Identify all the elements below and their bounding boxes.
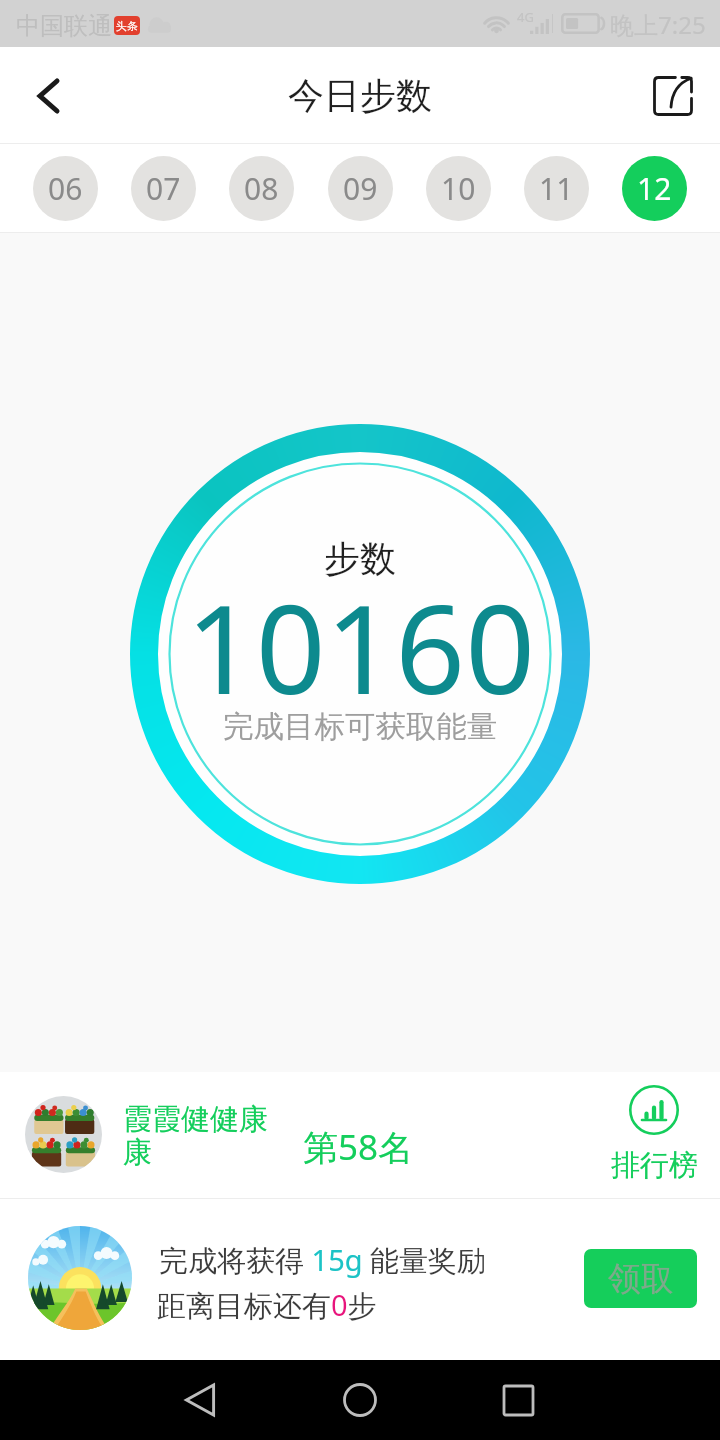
staticText: 排行榜 [611,1147,698,1184]
staticText: 领取 [608,1258,674,1300]
staticText: 第58名 [303,1123,414,1171]
staticText: 4G [517,8,534,26]
button[interactable]: 领取 [584,1249,697,1308]
button[interactable]: Back [0,47,88,144]
button[interactable]: 07 [131,156,196,221]
staticText: 步数 [324,536,396,581]
staticText: 完成将获得 15g 能量奖励 [159,1240,487,1280]
staticText: 12 [637,168,672,209]
button[interactable]: Back [170,1370,230,1430]
button[interactable]: Home [330,1370,390,1430]
staticText: 头条 [116,19,138,33]
staticText: 09 [343,168,378,209]
button[interactable]: 霞霞健健康康 [0,1072,720,1198]
button[interactable]: 11 [524,156,589,221]
staticText: 今日步数 [288,73,432,118]
staticText: 中国联通 [16,11,112,41]
staticText: 10160 [186,564,535,730]
button[interactable]: 06 [33,156,98,221]
staticText: 完成目标可获取能量 [223,708,498,746]
button[interactable]: 10 [426,156,491,221]
button[interactable]: 09 [328,156,393,221]
staticText: 07 [146,168,181,209]
staticText: 霞霞健健康康 [123,1101,273,1170]
button[interactable]: 12 [622,156,687,221]
staticText: 06 [48,168,83,209]
staticText: 距离目标还有0步 [157,1285,377,1325]
staticText: 晚上7:25 [610,8,706,41]
button[interactable]: 08 [229,156,294,221]
staticText: 11 [539,168,574,209]
staticText: 08 [244,168,279,209]
button[interactable]: Recents [488,1370,548,1430]
button[interactable]: Share [632,47,720,144]
staticText: 10 [441,168,476,209]
button[interactable]: 排行榜 [604,1085,704,1184]
